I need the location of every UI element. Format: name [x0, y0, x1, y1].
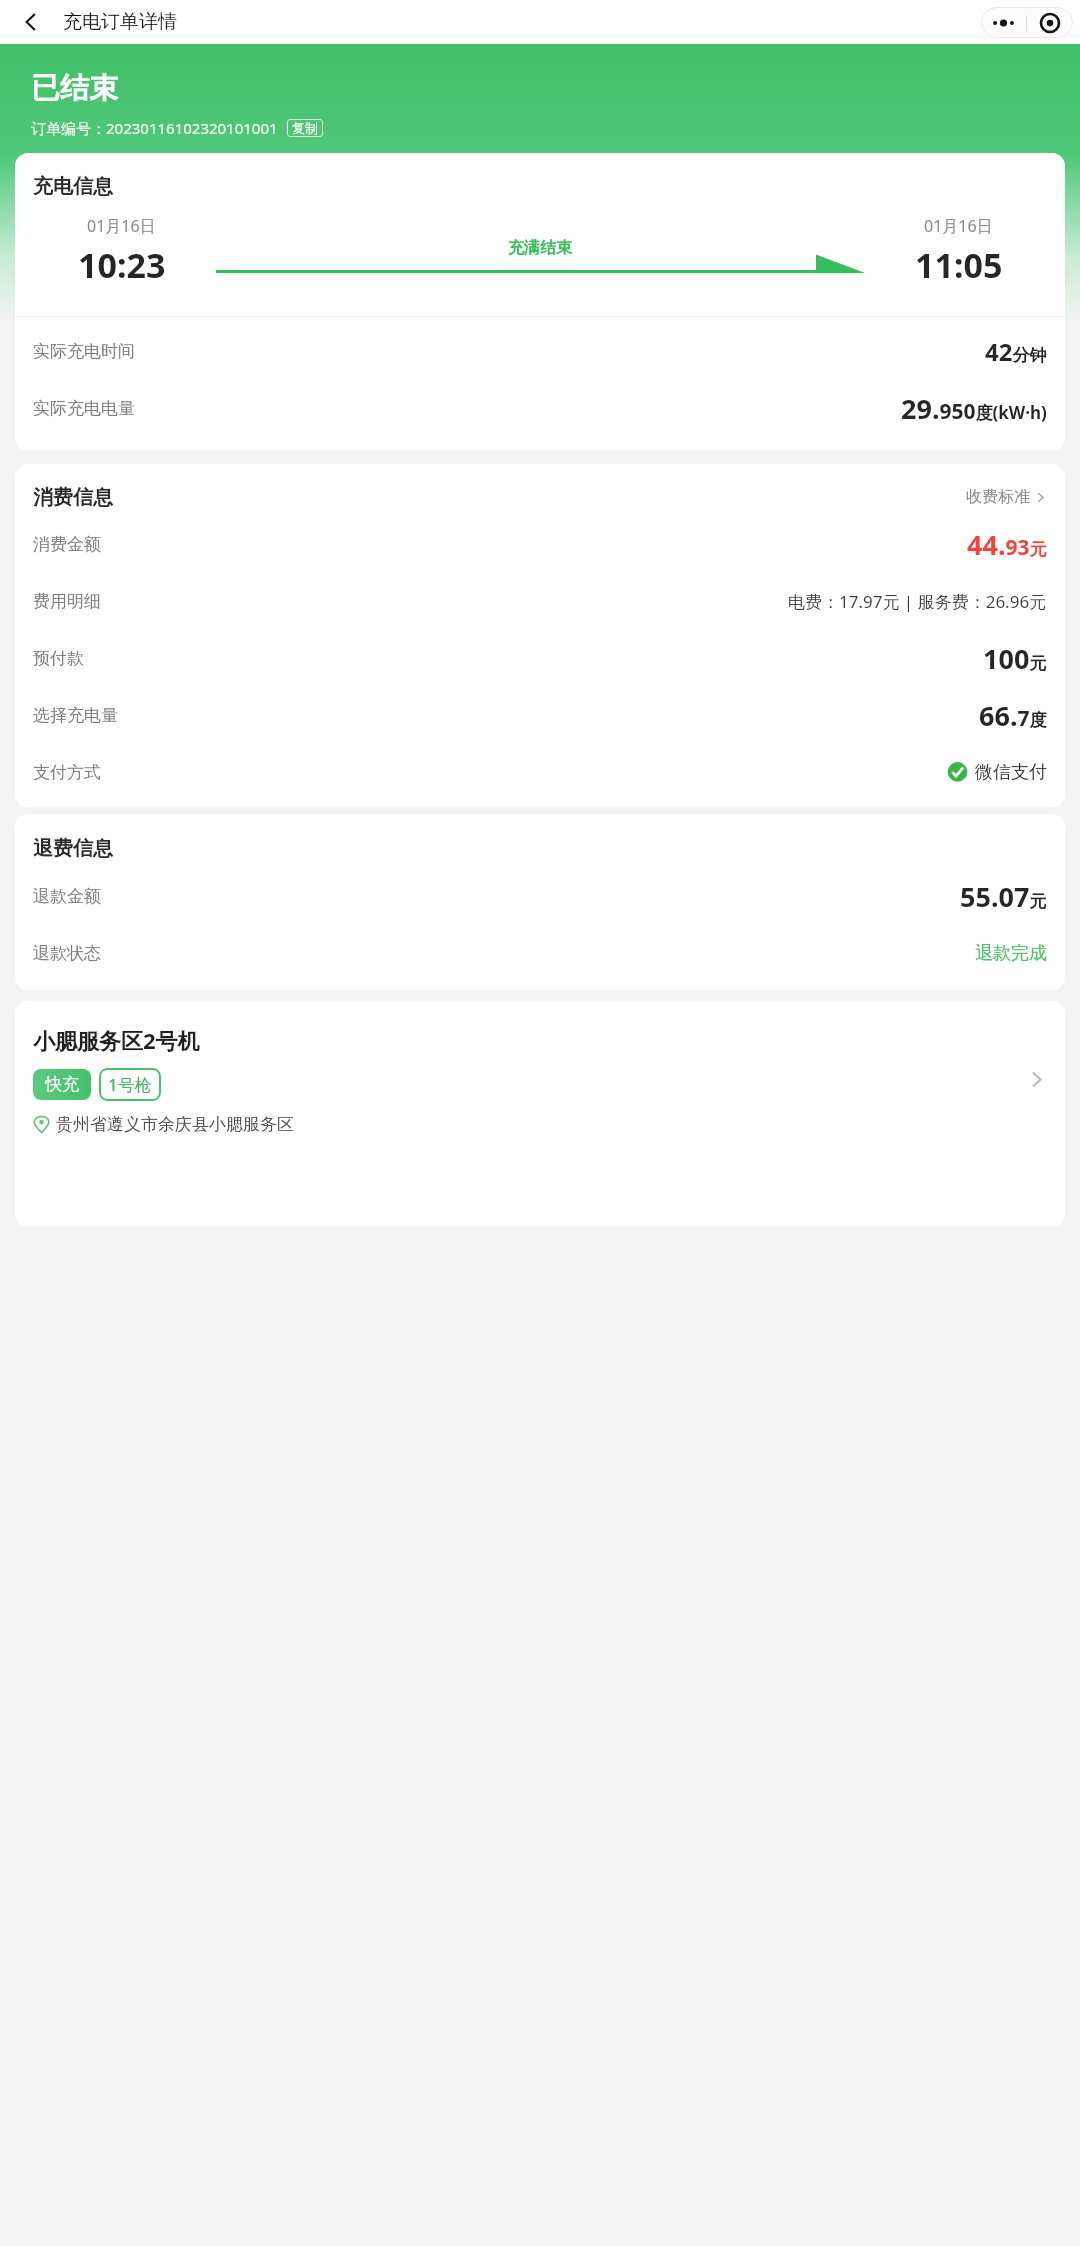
staticText: 66.7度 [979, 697, 1047, 734]
button[interactable]: 小腮服务区2号机 [15, 1001, 1065, 1227]
staticText: 44.93元 [967, 526, 1047, 563]
staticText: 快充 [45, 1074, 79, 1095]
staticText: 01月16日 [87, 215, 156, 237]
staticText: 贵州省遵义市余庆县小腮服务区 [56, 1114, 294, 1135]
button[interactable]: More options [981, 7, 1026, 38]
staticText: 55.07元 [960, 878, 1047, 915]
button[interactable]: 收费标准 [966, 483, 1047, 511]
staticText: 退费信息 [33, 836, 113, 861]
staticText: 实际充电电量 [33, 398, 135, 419]
staticText: 实际充电时间 [33, 341, 135, 362]
staticText: 42分钟 [985, 335, 1047, 368]
staticText: 消费金额 [33, 534, 101, 555]
staticText: 小腮服务区2号机 [33, 1025, 200, 1055]
staticText: 1号枪 [108, 1073, 152, 1096]
staticText: 退款完成 [975, 942, 1047, 965]
staticText: 29.950度(kW·h) [901, 390, 1047, 427]
staticText: 选择充电量 [33, 705, 118, 726]
staticText: 支付方式 [33, 762, 101, 783]
staticText: 收费标准 [966, 487, 1030, 507]
staticText: 10:23 [78, 242, 166, 288]
staticText: 微信支付 [975, 761, 1047, 784]
staticText: 退款金额 [33, 886, 101, 907]
button[interactable]: Back [8, 0, 54, 44]
staticText: 充满结束 [508, 238, 572, 258]
staticText: 电费：17.97元 | 服务费：26.96元 [788, 590, 1047, 613]
staticText: 预付款 [33, 648, 84, 669]
staticText: 费用明细 [33, 591, 101, 612]
staticText: 消费信息 [33, 485, 113, 510]
staticText: 退款状态 [33, 943, 101, 964]
staticText: 01月16日 [924, 215, 993, 237]
staticText: 充电信息 [33, 174, 113, 199]
staticText: 100元 [983, 640, 1047, 677]
staticText: 订单编号：20230116102320101001 [31, 118, 278, 138]
button[interactable]: Close mini program [1027, 7, 1073, 38]
staticText: 充电订单详情 [63, 10, 177, 34]
staticText: 复制 [292, 120, 318, 136]
button[interactable]: 复制 [287, 119, 323, 137]
staticText: 已结束 [31, 70, 118, 107]
staticText: 11:05 [915, 242, 1003, 288]
